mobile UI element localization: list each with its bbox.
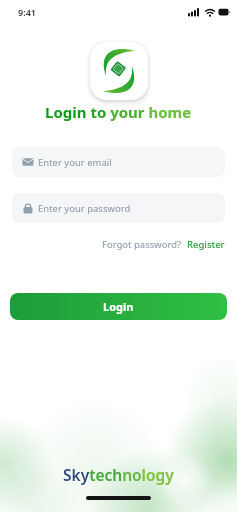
staticText: Login to your home <box>45 102 192 122</box>
button[interactable]: Forgot password? <box>102 238 182 251</box>
staticText: Skytechnology <box>63 464 174 485</box>
staticText: Enter your email <box>38 156 112 169</box>
staticText: 9:41 <box>18 6 36 18</box>
staticText: Enter your password <box>38 202 131 215</box>
button[interactable]: Register <box>187 238 225 251</box>
button[interactable]: Login <box>10 293 227 320</box>
staticText: Login <box>103 299 134 314</box>
button[interactable]: Enter your email <box>12 147 225 177</box>
button[interactable]: Enter your password <box>12 193 225 223</box>
